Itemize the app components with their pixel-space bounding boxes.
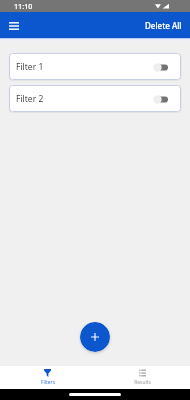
staticText: Results [134,379,151,386]
button[interactable]: Filter 2 [9,85,181,112]
staticText: Delete All [145,20,182,31]
button[interactable]: Filters [0,366,95,389]
button[interactable]: Results [95,366,190,389]
button[interactable]: Add filter [80,322,110,352]
button[interactable]: Toggle filter [154,93,176,105]
button[interactable]: Menu [4,16,23,35]
staticText: Filters [41,379,55,386]
button[interactable]: Filter 1 [9,53,181,80]
button[interactable]: Delete All [136,14,190,37]
staticText: Filter 1 [16,61,44,73]
staticText: 11:10 [14,1,33,11]
button[interactable]: Toggle filter [154,61,176,73]
staticText: Filter 2 [16,93,44,105]
